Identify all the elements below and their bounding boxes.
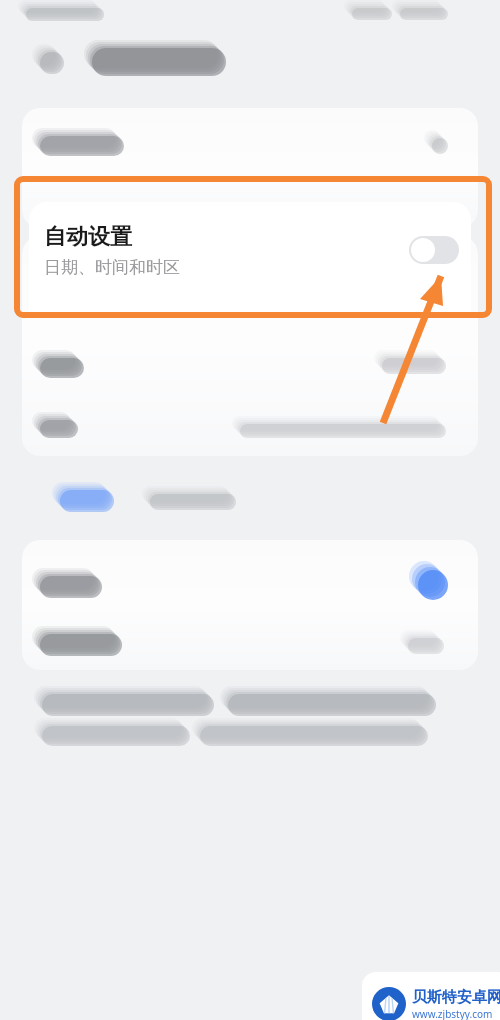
staticText: 贝斯特安卓网	[412, 988, 500, 1007]
staticText: www.zjbstyy.com	[412, 1007, 493, 1020]
staticText: 自动设置	[44, 223, 132, 251]
staticText: 日期、时间和时区	[44, 257, 180, 278]
button[interactable]: 自动设置	[29, 202, 471, 298]
button[interactable]: 自动设置开关	[409, 236, 459, 264]
